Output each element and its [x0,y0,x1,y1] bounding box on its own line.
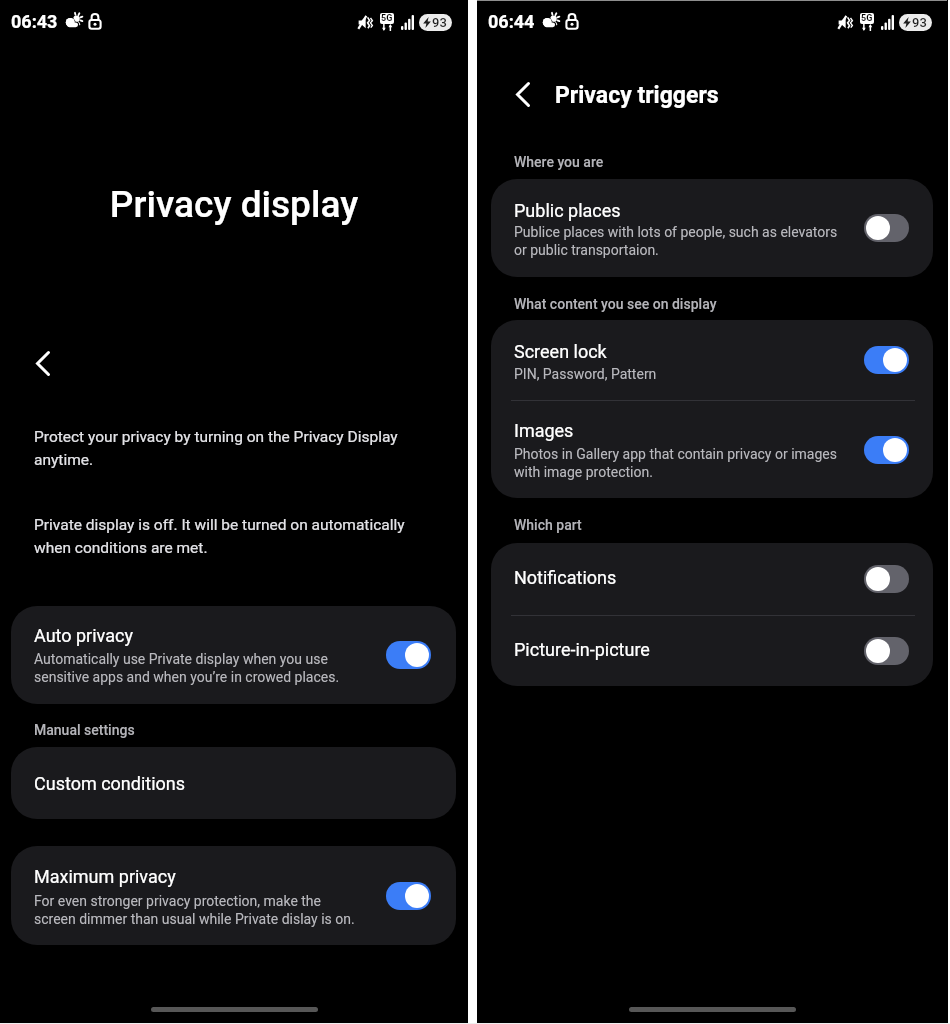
button[interactable]: Switch off [864,214,909,242]
staticText: Privacy triggers [555,82,719,109]
button[interactable]: Picture-in-picture [491,616,933,686]
staticText: Where you are [514,154,604,170]
button[interactable]: Switch on [864,346,909,374]
staticText: What content you see on display [514,296,717,312]
staticText: 06:43 [11,11,58,32]
button[interactable]: Screen lock [491,320,933,400]
button[interactable]: Images [491,401,933,498]
staticText: 06:44 [488,11,535,32]
staticText: Picture-in-picture [514,639,650,660]
staticText: Protect your privacy by turning on the P… [34,428,412,469]
staticText: 5G [381,13,393,24]
staticText: Which part [514,517,582,533]
button[interactable]: Switch on [386,882,431,910]
staticText: Photos in Gallery app that contain priva… [514,446,846,481]
staticText: Automatically use Private display when y… [34,651,366,686]
button[interactable]: Switch off [864,637,909,665]
staticText: Public places [514,200,621,221]
staticText: Notifications [514,567,617,588]
button[interactable]: Notifications [491,543,933,615]
staticText: 93 [432,15,447,30]
button[interactable]: Maximum privacy [11,846,456,945]
staticText: Screen lock [514,341,607,362]
staticText: 93 [912,15,927,30]
staticText: For even stronger privacy protection, ma… [34,893,366,928]
button[interactable]: Switch on [386,641,431,669]
button[interactable]: Custom conditions [11,747,456,819]
staticText: Custom conditions [34,773,186,794]
staticText: Privacy display [0,183,468,226]
staticText: Manual settings [34,722,135,738]
staticText: PIN, Password, Pattern [514,366,657,382]
button[interactable]: Public places [491,179,933,277]
button[interactable]: Switch off [864,565,909,593]
staticText: Auto privacy [34,625,133,646]
button[interactable]: Auto privacy [11,606,456,704]
button[interactable]: Switch on [864,436,909,464]
staticText: Private display is off. It will be turne… [34,516,412,557]
staticText: 5G [861,13,873,24]
staticText: Publice places with lots of people, such… [514,224,846,259]
staticText: Maximum privacy [34,866,176,887]
staticText: Images [514,420,574,441]
button[interactable]: Navigate up [516,82,530,107]
button[interactable]: Navigate up [36,351,50,376]
